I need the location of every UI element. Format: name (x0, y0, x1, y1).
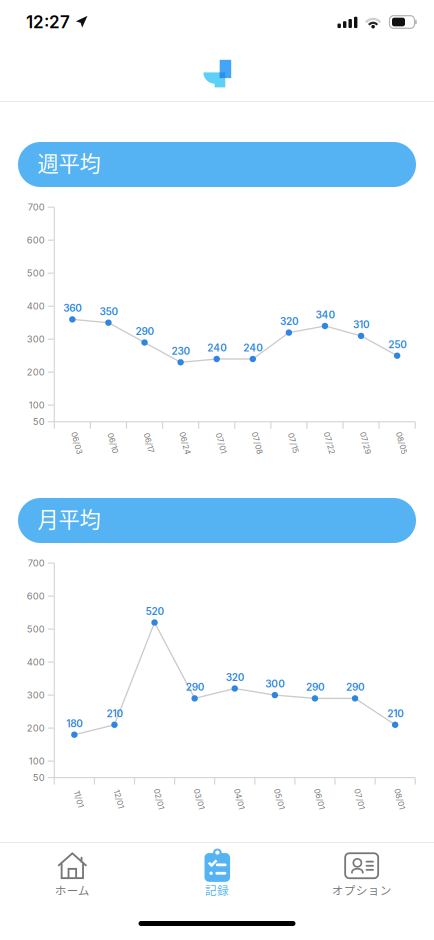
staticText: 500 (27, 267, 45, 279)
staticText: 06/17 (138, 438, 159, 448)
staticText: 02/01 (148, 794, 169, 804)
staticText: 340 (315, 309, 335, 321)
staticText: 11/01 (70, 794, 87, 804)
staticText: 230 (172, 345, 191, 357)
staticText: 月平均 (37, 503, 100, 534)
staticText: 07/15 (283, 438, 304, 448)
staticText: 520 (145, 605, 164, 617)
staticText: 290 (186, 681, 205, 693)
staticText: 50 (33, 416, 45, 427)
staticText: 05/01 (269, 794, 290, 804)
staticText: 290 (306, 681, 325, 693)
staticText: 240 (207, 342, 227, 354)
staticText: 290 (346, 681, 365, 693)
staticText: 400 (27, 300, 45, 312)
staticText: 600 (27, 234, 45, 246)
staticText: 320 (226, 671, 245, 683)
staticText: 07/01 (349, 794, 370, 804)
staticText: 250 (388, 338, 407, 351)
staticText: 360 (63, 302, 82, 314)
staticText: 07/08 (246, 438, 269, 448)
staticText: 300 (27, 689, 45, 701)
staticText: 08/05 (390, 438, 413, 448)
staticText: 210 (106, 708, 123, 720)
staticText: 100 (29, 399, 45, 411)
staticText: 200 (27, 722, 45, 734)
staticText: 12/01 (109, 794, 128, 804)
staticText: 180 (66, 717, 83, 730)
staticText: オプション (332, 882, 392, 898)
button[interactable]: 記録 (145, 843, 289, 903)
staticText: 12:27 (26, 12, 70, 32)
staticText: ホーム (55, 882, 90, 898)
staticText: 03/01 (189, 794, 210, 804)
staticText: 06/01 (309, 794, 330, 804)
staticText: 04/01 (229, 794, 250, 804)
staticText: 08/01 (389, 794, 410, 804)
staticText: 290 (135, 325, 154, 337)
button[interactable]: App logo (202, 58, 232, 88)
button[interactable]: 週平均 (18, 142, 416, 187)
staticText: 200 (27, 366, 45, 378)
staticText: 50 (33, 772, 45, 783)
staticText: 240 (243, 342, 263, 354)
button[interactable]: ホーム (0, 843, 145, 903)
staticText: 350 (99, 305, 118, 318)
staticText: 記録 (205, 882, 229, 898)
staticText: 07/29 (354, 438, 377, 448)
staticText: 300 (27, 333, 45, 345)
staticText: 07/01 (211, 438, 232, 448)
button[interactable]: オプション (289, 843, 434, 903)
staticText: 07/22 (318, 438, 341, 448)
staticText: 06/03 (65, 438, 88, 448)
staticText: 600 (27, 590, 45, 602)
staticText: 100 (29, 755, 45, 767)
staticText: 320 (280, 315, 299, 327)
staticText: 06/10 (102, 438, 123, 448)
staticText: 700 (28, 557, 45, 569)
staticText: 500 (27, 623, 45, 635)
staticText: 700 (28, 201, 45, 213)
staticText: 310 (353, 319, 370, 331)
staticText: 06/24 (174, 438, 197, 448)
staticText: 週平均 (37, 147, 100, 178)
staticText: 300 (265, 678, 285, 690)
button[interactable]: 月平均 (18, 498, 416, 543)
staticText: 400 (27, 656, 45, 668)
staticText: 210 (387, 708, 404, 720)
